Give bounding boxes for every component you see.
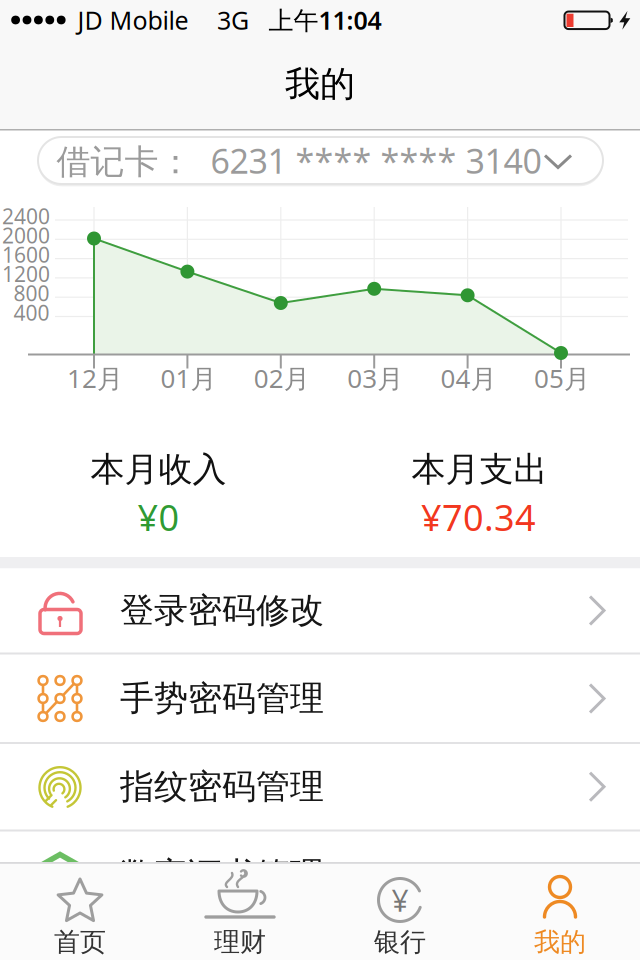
button[interactable]: 登录密码修改 (0, 568, 640, 652)
staticText: 400 (13, 298, 49, 327)
staticText: 我的 (285, 62, 355, 106)
staticText: 指纹密码管理 (120, 765, 324, 808)
staticText: 04月 (441, 360, 497, 396)
button[interactable]: ¥ (320, 864, 480, 960)
staticText: 登录密码修改 (120, 589, 324, 632)
staticText: 05月 (534, 360, 590, 396)
button[interactable]: 借记卡： 6231 **** **** 3140 (38, 137, 603, 184)
staticText: 银行 (374, 926, 426, 958)
staticText: ¥70.34 (421, 492, 536, 541)
button[interactable]: 数字证书管理 (0, 833, 640, 921)
staticText: 1600 (2, 240, 50, 269)
staticText: 借记卡： 6231 **** **** 3140 (56, 137, 541, 184)
staticText: 800 (13, 279, 49, 307)
button[interactable]: 指纹密码管理 (0, 744, 640, 829)
staticText: 理财 (214, 926, 266, 958)
staticText: 我的 (534, 926, 586, 958)
staticText: 首页 (54, 926, 106, 958)
staticText: 2000 (2, 221, 50, 250)
staticText: 01月 (160, 360, 216, 396)
staticText: 03月 (347, 360, 403, 396)
staticText: ¥ (391, 880, 408, 920)
staticText: ¥0 (137, 492, 179, 541)
staticText: 本月收入 (90, 448, 226, 491)
staticText: 12月 (67, 360, 123, 396)
staticText: 1200 (2, 260, 50, 288)
staticText: 上午11:04 (268, 3, 381, 37)
staticText: 数字证书管理 (120, 854, 324, 896)
staticText: 02月 (254, 360, 310, 396)
button[interactable]: 手势密码管理 (0, 655, 640, 742)
button[interactable]: 理财 (160, 864, 320, 960)
staticText: 手势密码管理 (120, 677, 324, 720)
button[interactable]: 我的 (480, 864, 640, 960)
staticText: 3G (217, 3, 249, 37)
staticText: 本月支出 (411, 448, 547, 491)
staticText: 2400 (2, 202, 50, 230)
button[interactable]: 首页 (0, 864, 160, 960)
staticText: JD Mobile (77, 3, 188, 37)
